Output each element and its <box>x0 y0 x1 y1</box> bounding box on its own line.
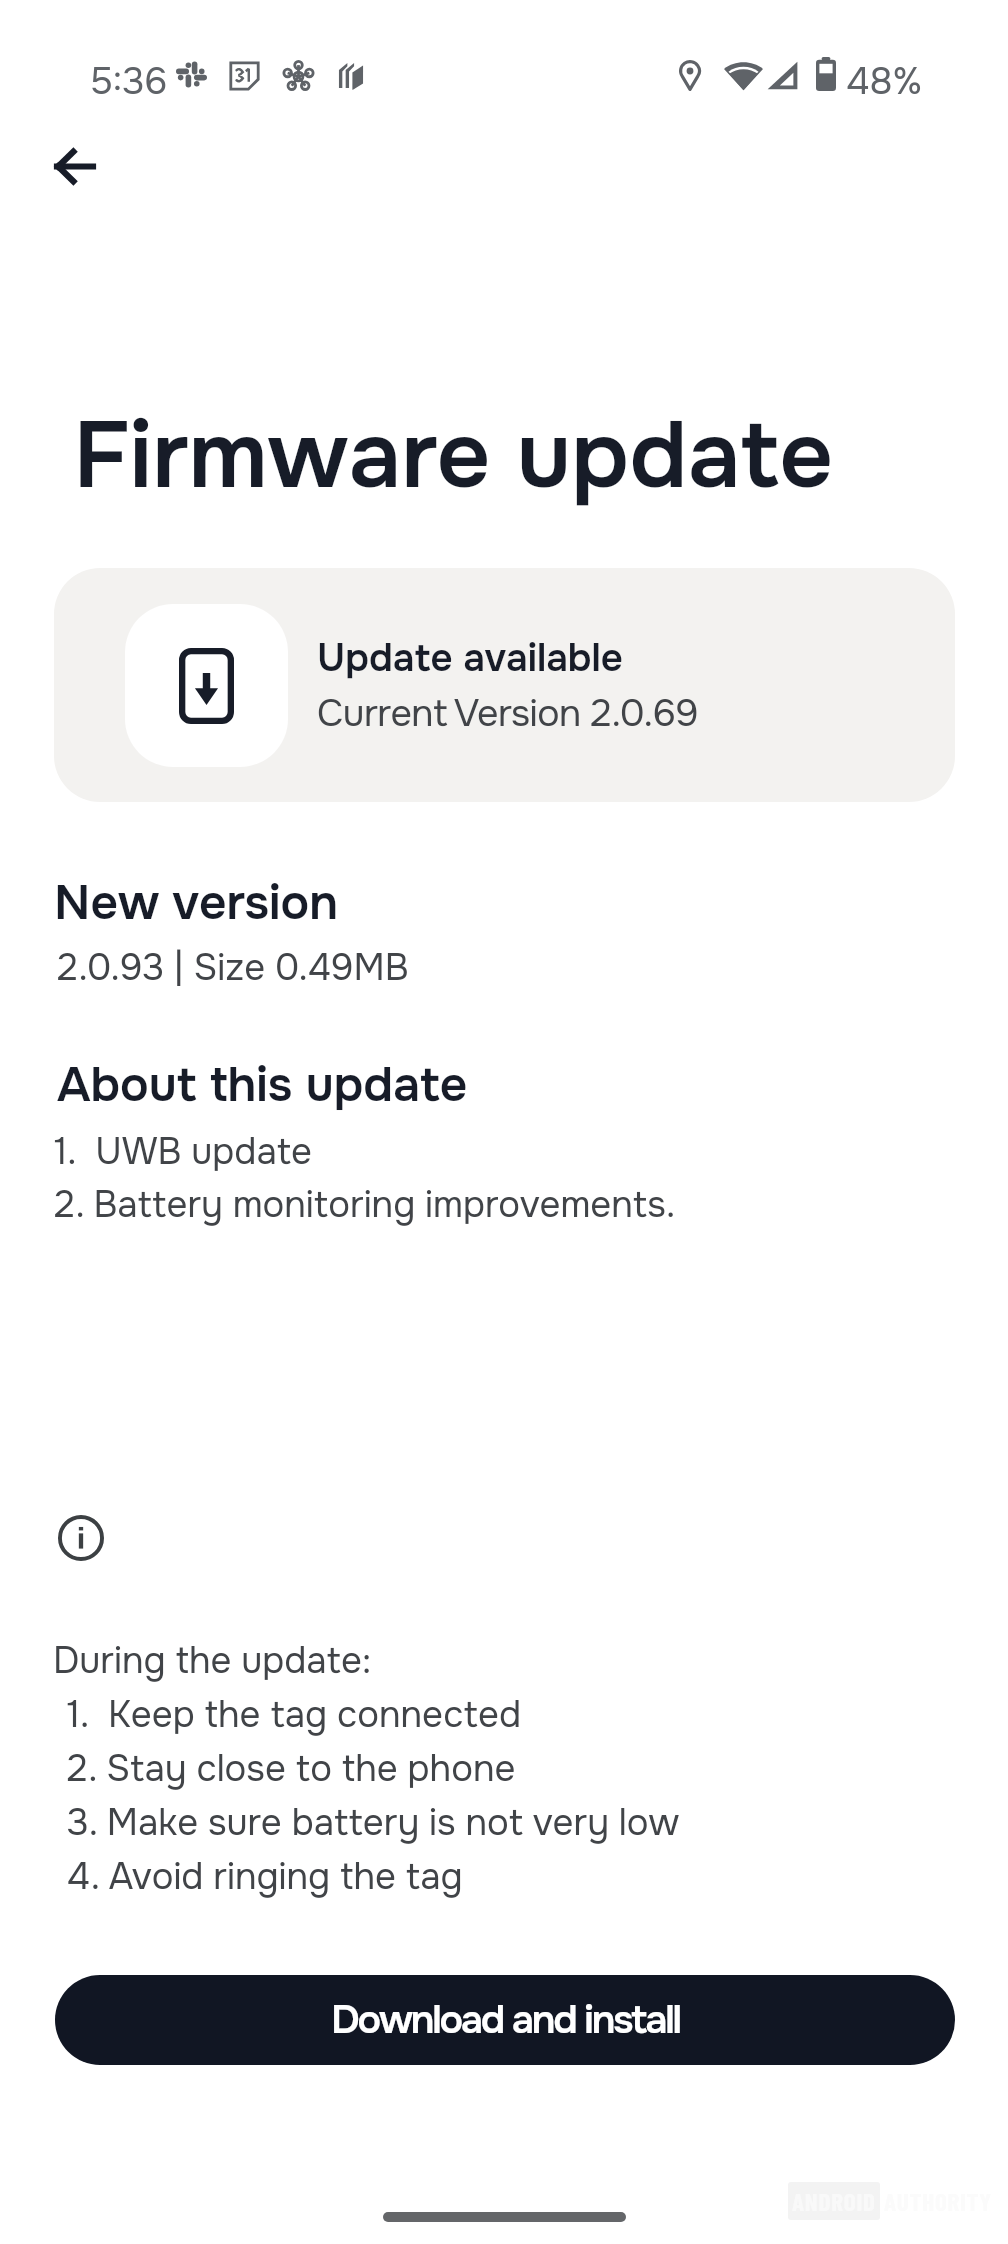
button[interactable]: Back <box>26 118 122 214</box>
other: Information <box>58 1515 104 1561</box>
staticText: 1. UWB update 2. Battery monitoring impr… <box>54 1129 676 1228</box>
staticText: New version <box>54 872 339 933</box>
button[interactable]: Update available <box>54 568 955 802</box>
staticText: Download and install <box>331 1995 680 2045</box>
staticText: Current Version 2.0.69 <box>317 690 698 738</box>
button[interactable]: Download and install <box>55 1975 955 2065</box>
staticText: 5:36 <box>90 58 168 105</box>
staticText: Update available <box>317 634 623 683</box>
staticText: During the update: 1. Keep the tag conne… <box>53 1638 680 1900</box>
staticText: 48% <box>846 58 923 105</box>
staticText: About this update <box>57 1054 468 1115</box>
staticText: 2.0.93 | Size 0.49MB <box>57 945 409 992</box>
staticText: Firmware update <box>73 396 834 516</box>
